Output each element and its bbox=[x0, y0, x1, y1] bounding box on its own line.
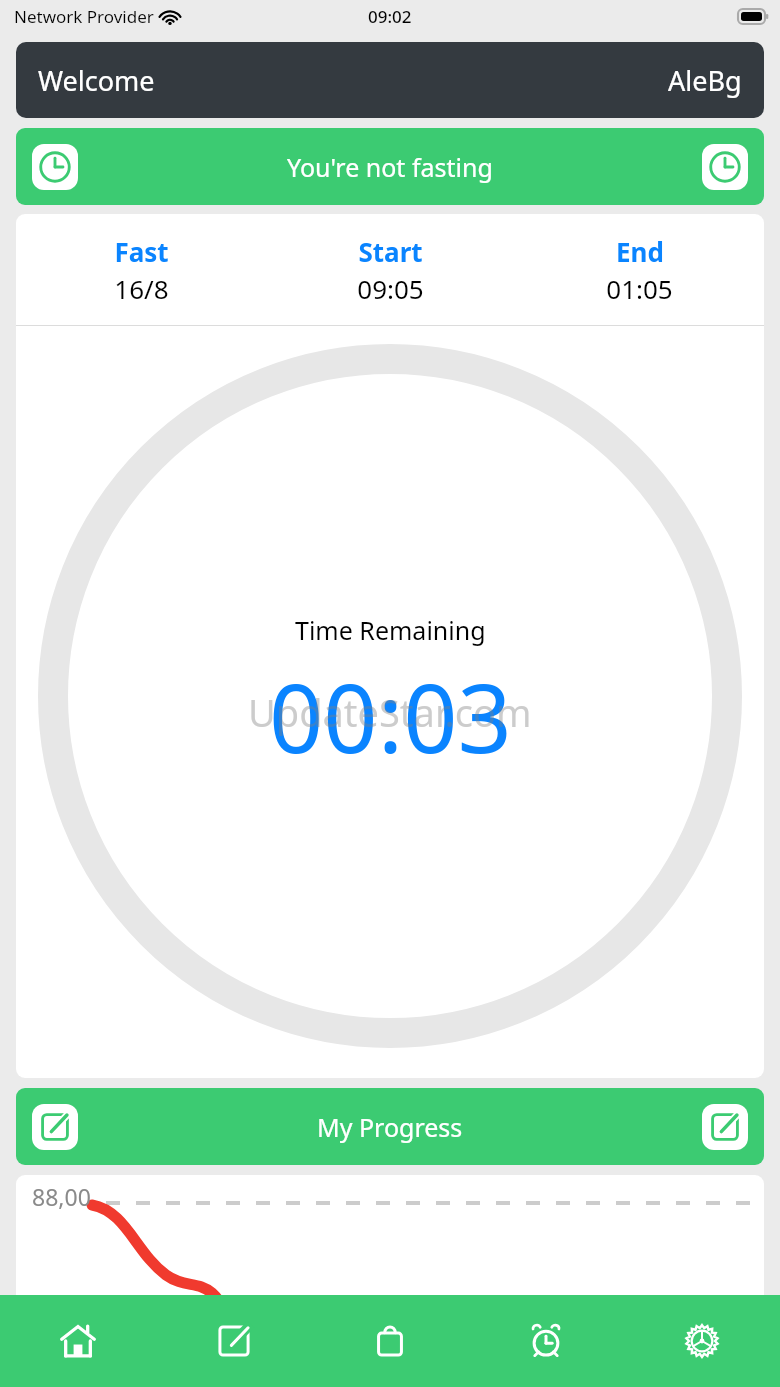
staticText: My Progress bbox=[317, 1110, 463, 1144]
staticText: UpdateStar.com bbox=[248, 686, 532, 738]
staticText: 01:05 bbox=[606, 271, 673, 306]
button[interactable]: Edit progress bbox=[16, 1088, 764, 1165]
button[interactable]: 88,00 bbox=[16, 1175, 764, 1387]
other: Add entry bbox=[702, 1104, 748, 1150]
staticText: AleBg bbox=[668, 62, 742, 99]
staticText: 09:02 bbox=[368, 5, 412, 28]
button[interactable]: End bbox=[515, 234, 764, 306]
staticText: 00:03 bbox=[269, 651, 512, 780]
button[interactable]: Alarm bbox=[468, 1295, 624, 1387]
staticText: Welcome bbox=[38, 62, 155, 99]
button[interactable]: Start bbox=[266, 234, 515, 306]
other: Edit progress bbox=[32, 1104, 78, 1150]
button[interactable]: Settings bbox=[624, 1295, 780, 1387]
staticText: Network Provider bbox=[14, 5, 154, 28]
staticText: 88,00 bbox=[32, 1181, 91, 1212]
button[interactable]: Fast bbox=[16, 234, 266, 306]
staticText: 09:05 bbox=[357, 271, 424, 306]
staticText: Time Remaining bbox=[295, 613, 486, 647]
button[interactable]: Home bbox=[0, 1295, 156, 1387]
button[interactable]: Start fast bbox=[16, 128, 764, 205]
staticText: Start bbox=[358, 234, 423, 269]
button[interactable]: Shop bbox=[312, 1295, 468, 1387]
other: Start fast bbox=[32, 144, 78, 190]
other: Fasting timer bbox=[702, 144, 748, 190]
staticText: End bbox=[616, 234, 664, 269]
staticText: 16/8 bbox=[114, 271, 169, 306]
button[interactable]: Welcome bbox=[16, 42, 764, 118]
staticText: Fast bbox=[114, 234, 169, 269]
staticText: You're not fasting bbox=[287, 150, 493, 184]
button[interactable]: Journal bbox=[156, 1295, 312, 1387]
